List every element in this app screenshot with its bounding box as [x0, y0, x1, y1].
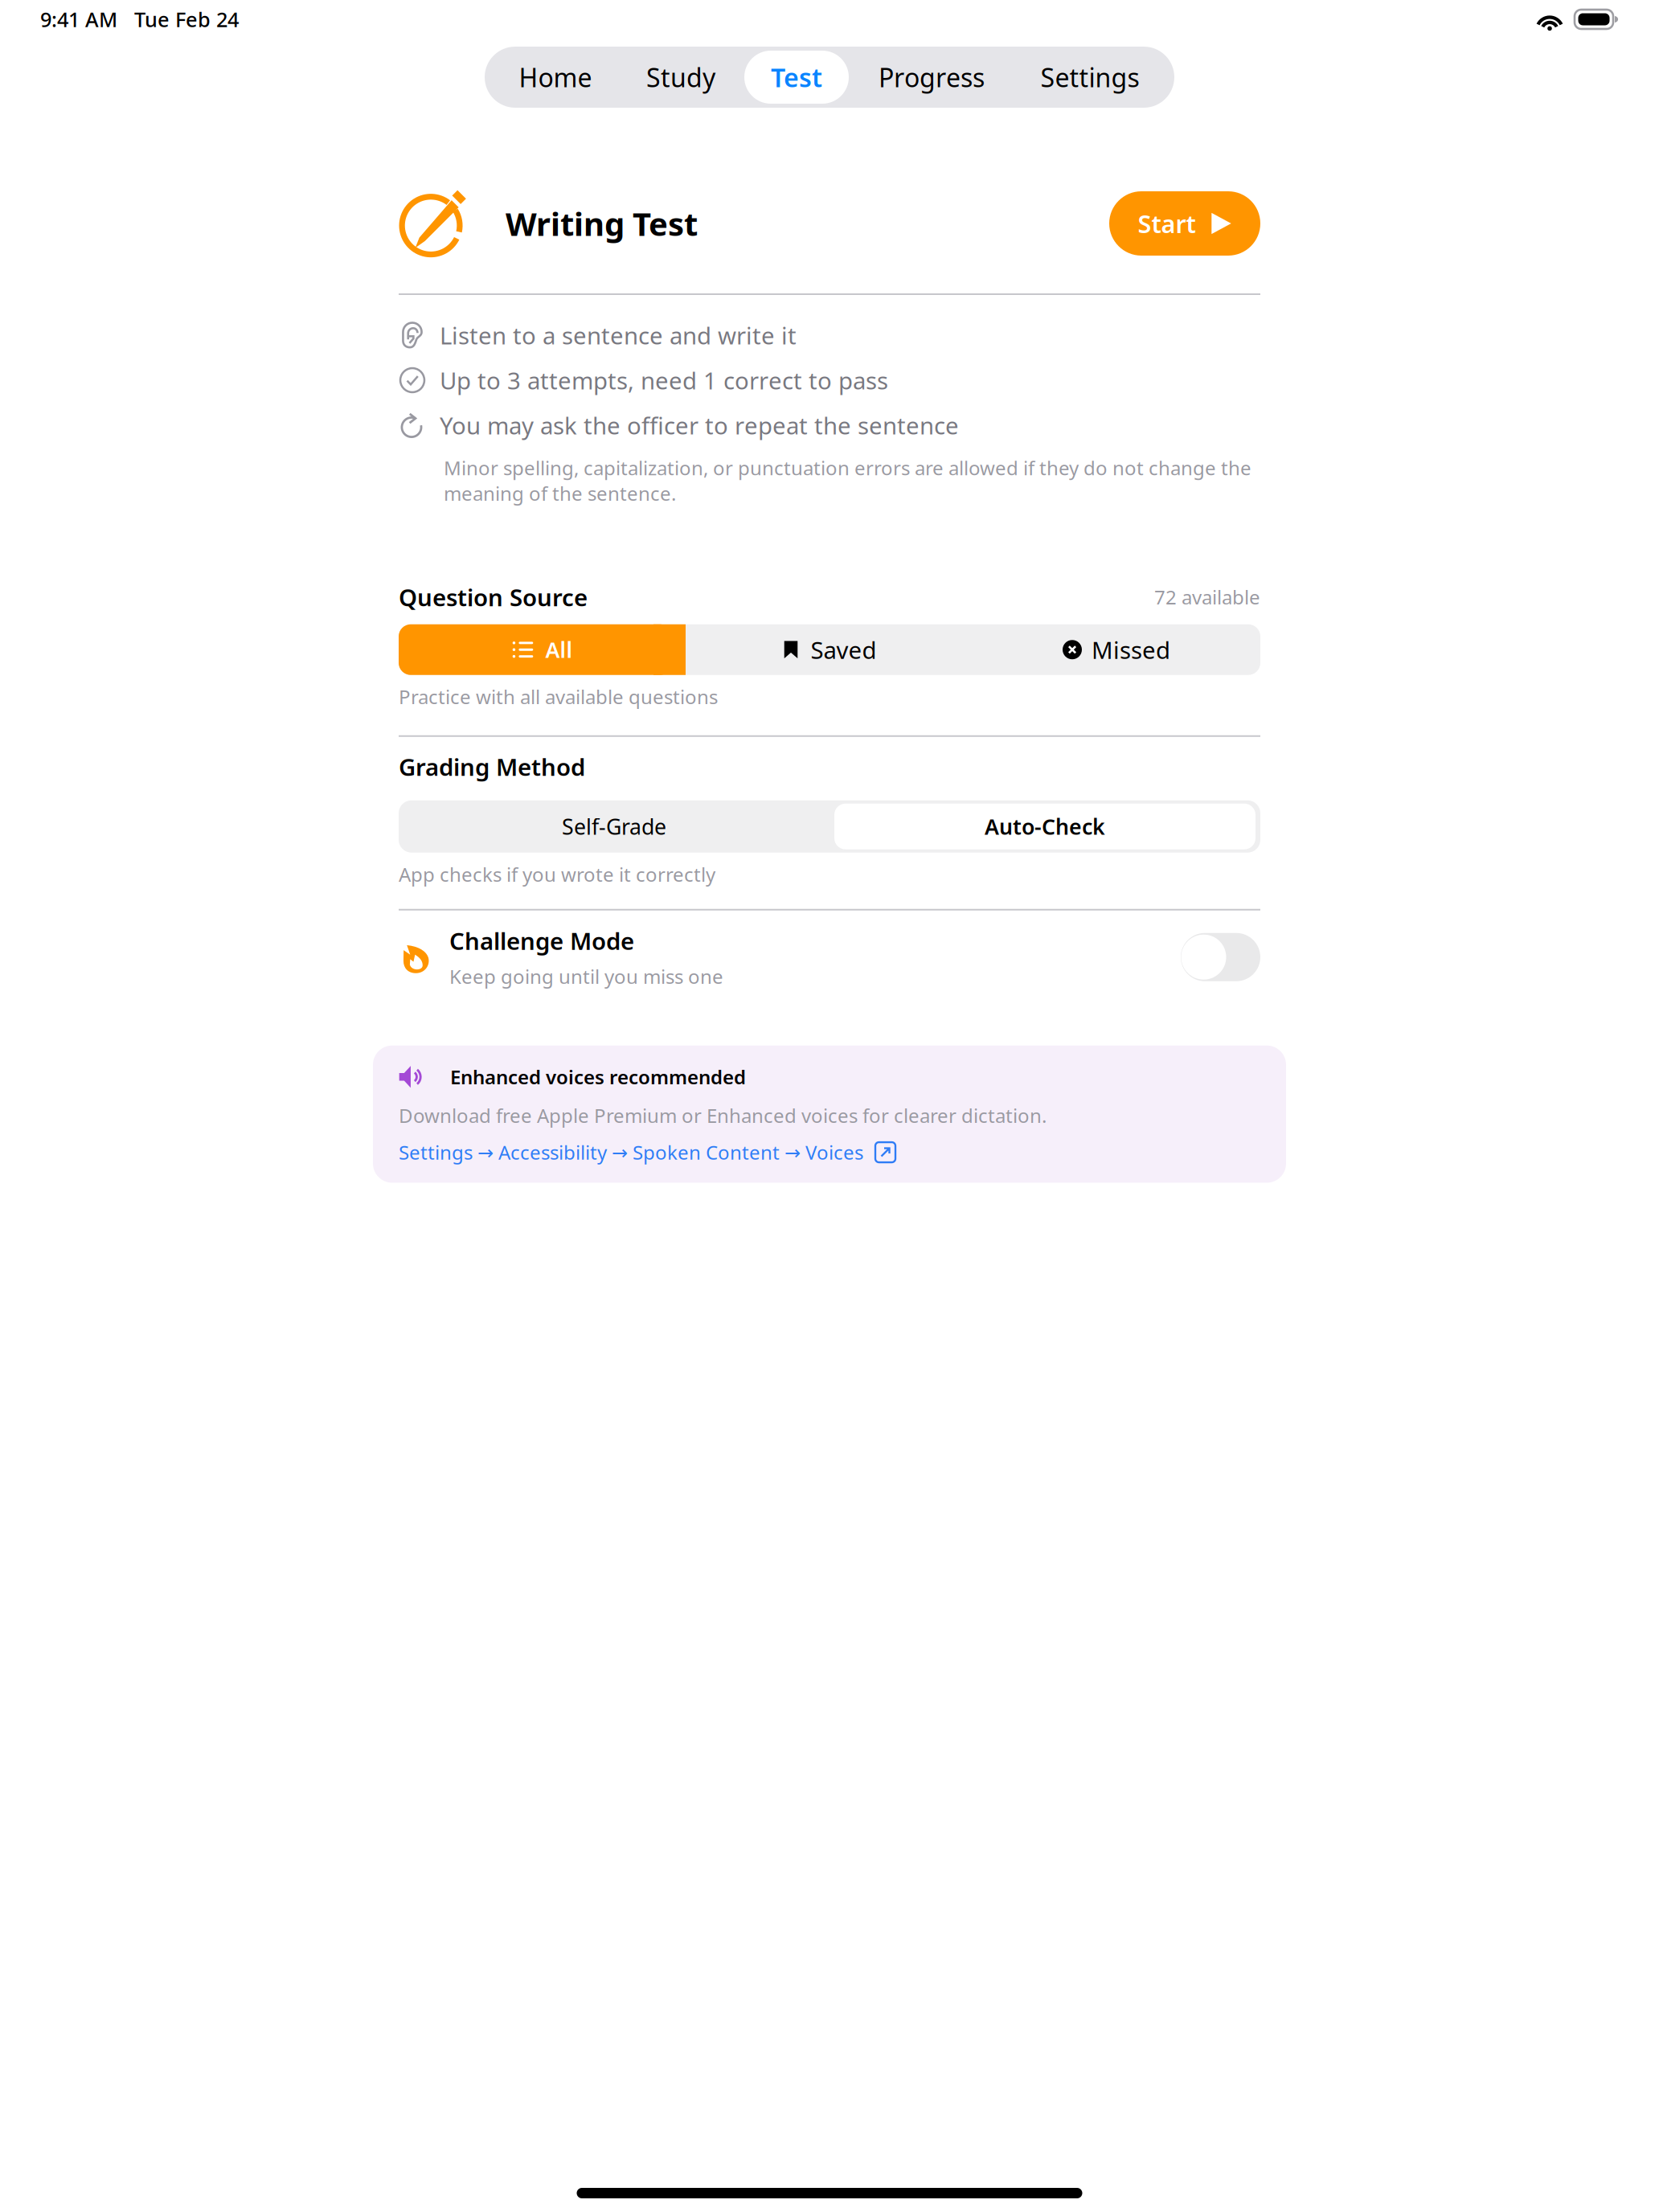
staticText: Settings → Accessibility → Spoken Conten… — [399, 1139, 863, 1165]
staticText: Settings — [1040, 60, 1139, 94]
staticText: Grading Method — [399, 751, 585, 782]
button[interactable]: Home — [485, 47, 626, 108]
staticText: Listen to a sentence and write it — [440, 320, 797, 351]
staticText: 9:41 AM Tue Feb 24 — [40, 6, 239, 33]
staticText: Home — [519, 60, 592, 94]
button[interactable]: Auto-Check — [829, 800, 1260, 853]
staticText: Start — [1138, 207, 1196, 240]
staticText: You may ask the officer to repeat the se… — [440, 410, 959, 441]
staticText: Saved — [811, 634, 877, 665]
button[interactable]: All — [399, 624, 686, 675]
staticText: Minor spelling, capitalization, or punct… — [444, 455, 1251, 506]
button[interactable]: Start — [1109, 191, 1260, 256]
button[interactable]: Progress — [858, 47, 1006, 108]
staticText: Progress — [879, 60, 985, 94]
staticText: Download free Apple Premium or Enhanced … — [399, 1103, 1047, 1128]
button[interactable]: Self-Grade — [399, 800, 829, 853]
button[interactable]: Study — [626, 47, 735, 108]
button[interactable]: Missed — [973, 624, 1260, 675]
staticText: Writing Test — [506, 202, 698, 245]
staticText: Test — [771, 60, 822, 94]
staticText: Up to 3 attempts, need 1 correct to pass — [440, 365, 888, 396]
button[interactable]: Challenge Mode — [399, 919, 1260, 995]
staticText: Challenge Mode — [449, 925, 634, 956]
staticText: All — [545, 635, 573, 664]
staticText: Auto-Check — [985, 812, 1105, 841]
staticText: App checks if you wrote it correctly — [399, 861, 715, 887]
button[interactable]: Test — [735, 47, 858, 108]
staticText: Practice with all available questions — [399, 684, 718, 709]
button[interactable]: Saved — [686, 624, 973, 675]
button[interactable]: Settings — [1006, 47, 1174, 108]
button[interactable]: Settings → Accessibility → Spoken Conten… — [399, 1139, 1260, 1165]
staticText: 72 available — [1154, 584, 1260, 610]
staticText: Study — [646, 60, 715, 94]
staticText: Question Source — [399, 581, 588, 613]
staticText: Self-Grade — [562, 812, 666, 841]
staticText: Enhanced voices recommended — [450, 1064, 746, 1090]
staticText: Keep going until you miss one — [449, 964, 723, 989]
staticText: Missed — [1092, 634, 1170, 665]
